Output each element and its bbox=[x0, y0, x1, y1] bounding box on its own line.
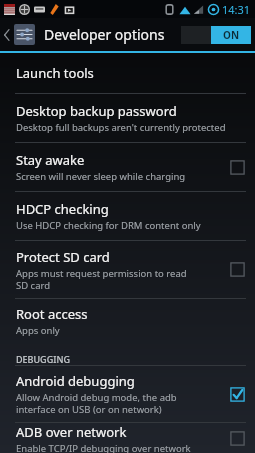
staticText: ADB over network bbox=[16, 423, 127, 441]
staticText: Apps only bbox=[16, 324, 60, 337]
button[interactable]: Developer options on bbox=[181, 26, 251, 44]
staticText: Apps must request permission to read SD … bbox=[16, 267, 187, 292]
staticText: 14:31 bbox=[222, 2, 251, 17]
button[interactable]: Protect SD card bbox=[0, 241, 255, 298]
button[interactable]: Root access bbox=[0, 299, 255, 343]
staticText: Developer options bbox=[44, 25, 165, 44]
button[interactable]: Desktop backup password bbox=[0, 94, 255, 142]
staticText: Desktop backup password bbox=[16, 102, 177, 120]
button[interactable]: ADB over network bbox=[0, 423, 255, 453]
button[interactable]: Navigate up bbox=[0, 24, 37, 45]
staticText: Screen will never sleep while charging bbox=[16, 170, 186, 183]
button[interactable]: Stay awake bbox=[0, 143, 255, 191]
staticText: Launch tools bbox=[16, 64, 94, 82]
staticText: Android debugging bbox=[16, 372, 135, 390]
button[interactable]: HDCP checking bbox=[0, 192, 255, 240]
staticText: Root access bbox=[16, 305, 88, 323]
staticText: ON bbox=[223, 28, 240, 42]
staticText: HDCP checking bbox=[16, 200, 109, 218]
staticText: Use HDCP checking for DRM content only bbox=[16, 219, 201, 232]
staticText: Enable TCP/IP debugging over network int… bbox=[16, 442, 191, 453]
staticText: DEBUGGING bbox=[16, 353, 70, 365]
button[interactable]: Android debugging bbox=[0, 366, 255, 422]
staticText: Desktop full backups aren't currently pr… bbox=[16, 121, 226, 134]
staticText: Protect SD card bbox=[16, 248, 110, 266]
button[interactable]: Launch tools bbox=[0, 53, 255, 93]
staticText: Allow Android debug mode, the adb interf… bbox=[16, 391, 177, 416]
staticText: Stay awake bbox=[16, 151, 85, 169]
